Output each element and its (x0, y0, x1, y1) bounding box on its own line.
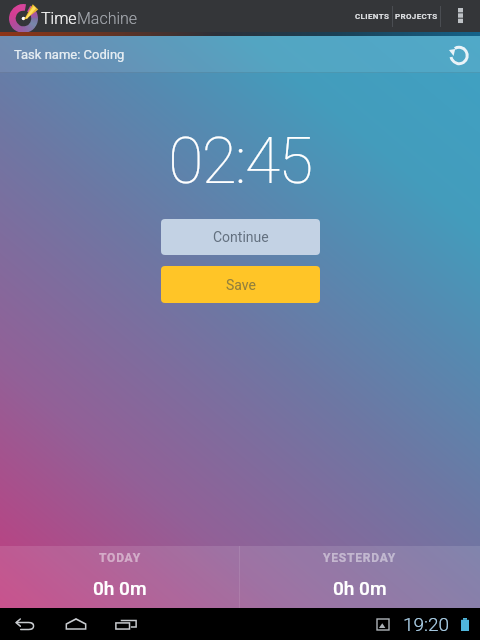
staticText: CLIENTS (355, 12, 390, 21)
staticText: 19:20 (403, 613, 450, 635)
button[interactable]: YESTERDAY (240, 546, 480, 608)
button[interactable]: CLIENTS (353, 0, 392, 32)
button[interactable]: Screenshot (372, 613, 394, 635)
staticText: Task name: Coding (14, 47, 125, 62)
staticText: Save (226, 277, 256, 293)
staticText: TODAY (99, 551, 141, 565)
button[interactable]: Save (161, 266, 320, 303)
staticText: Machine (77, 9, 138, 28)
staticText: 02:45 (0, 124, 480, 199)
staticText: PROJECTS (395, 12, 438, 21)
staticText: Continue (213, 229, 269, 245)
staticText: 0h 0m (333, 577, 387, 599)
button[interactable]: Home (51, 608, 101, 640)
staticText: YESTERDAY (323, 551, 397, 565)
button[interactable]: PROJECTS (393, 0, 440, 32)
staticText: 0h 0m (93, 577, 147, 599)
button[interactable]: More options (441, 0, 480, 32)
button[interactable]: Continue (161, 219, 320, 255)
staticText: Time (41, 9, 77, 28)
button[interactable]: TODAY (0, 546, 239, 608)
button[interactable]: Reset timer (442, 40, 472, 70)
button[interactable]: Recent apps (101, 608, 151, 640)
button[interactable]: Back (1, 608, 51, 640)
